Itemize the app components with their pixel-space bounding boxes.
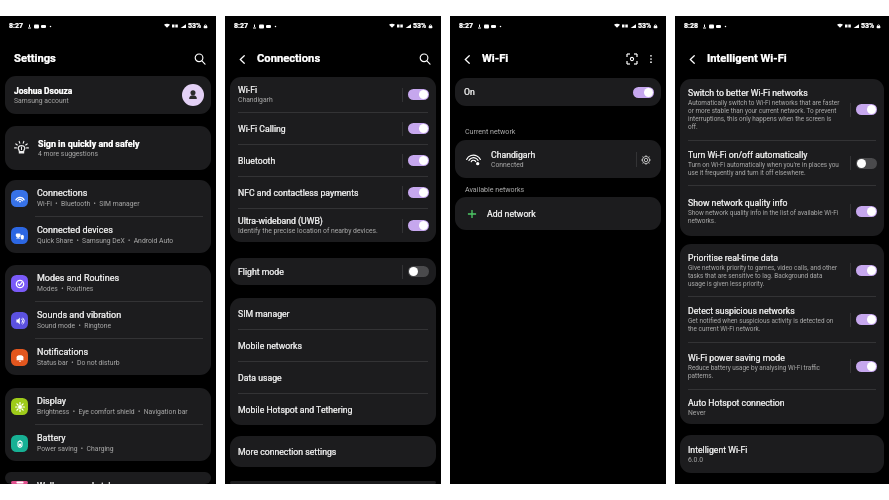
button[interactable]: Scan QR code [624,51,640,67]
button[interactable]: Data usage [230,362,436,393]
staticText: 8:27 [9,22,24,30]
button[interactable]: Bluetooth [230,145,436,176]
button[interactable]: Prioritise real-time data [680,244,884,296]
staticText: Battery [37,433,66,444]
staticText: Mobile Hotspot and Tethering [238,405,353,415]
staticText: Wi-Fi Calling [238,124,286,134]
staticText: NFC and contactless payments [238,188,359,198]
staticText: Brightness • Eye comfort shield • Naviga… [37,408,188,416]
button[interactable]: More options [643,51,659,67]
button[interactable]: Off [408,266,429,277]
button[interactable]: Wi-Fi power saving mode [680,343,884,389]
button[interactable]: Back [459,51,476,68]
button[interactable]: Turn Wi-Fi on/off automatically [680,141,884,185]
button[interactable]: Back [234,51,251,68]
button[interactable]: Network settings [637,151,654,168]
button[interactable]: On [408,155,429,166]
staticText: Intelligent Wi-Fi [707,52,787,65]
button[interactable]: Mobile Hotspot and Tethering [230,394,436,425]
staticText: Switch to better Wi-Fi networks [688,88,808,98]
staticText: Wi-Fi power saving mode [688,353,785,363]
button[interactable]: More connection settings [230,436,436,467]
button[interactable]: Profile [182,84,204,106]
staticText: Show network quality info [688,198,788,208]
button[interactable]: Battery [5,425,211,461]
button[interactable]: Connected devices [5,217,211,253]
button[interactable]: Wallpaper and style [5,481,211,484]
button[interactable]: Off [856,158,877,169]
button[interactable]: Auto Hotspot connection [680,390,884,424]
staticText: Turn on Wi-Fi automatically when you're … [688,161,840,177]
staticText: 4 more suggestions [38,150,98,158]
button[interactable]: Wi-Fi [230,77,436,112]
staticText: Settings [14,52,56,65]
button[interactable]: Joshua Dsouza [5,76,211,114]
button[interactable]: SIM manager [230,298,436,329]
staticText: Flight mode [238,267,284,277]
staticText: 53% [638,22,652,30]
staticText: Wallpaper and style [37,481,116,484]
button[interactable]: Chandigarh [455,140,661,178]
staticText: Wi-Fi • Bluetooth • SIM manager [37,200,140,208]
button[interactable]: Flight mode [230,258,436,285]
staticText: Prioritise real-time data [688,253,778,263]
staticText: 8:27 [459,22,474,30]
button[interactable]: Detect suspicious networks [680,297,884,342]
button[interactable]: On [856,314,877,325]
staticText: Auto Hotspot connection [688,398,785,408]
staticText: Connected devices [37,225,113,236]
button[interactable]: On [408,89,429,100]
staticText: Display [37,396,67,407]
button[interactable]: Connections [5,180,211,216]
button[interactable]: On [856,265,877,276]
staticText: Power saving • Charging [37,445,114,453]
staticText: Ultra-wideband (UWB) [238,216,323,226]
button[interactable]: Ultra-wideband (UWB) [230,209,436,242]
staticText: On [464,87,475,97]
staticText: Chandigarh [491,150,536,160]
button[interactable]: Search [416,50,434,68]
staticText: Samsung account [14,97,69,105]
button[interactable]: Add network [455,197,661,230]
button[interactable]: Sign in quickly and safely [5,126,211,170]
staticText: Sounds and vibration [37,310,122,321]
button[interactable]: On [856,104,877,115]
staticText: Show network quality info in the list of… [688,209,840,225]
staticText: Connected [491,161,524,169]
button[interactable]: Switch to better Wi-Fi networks [680,79,884,140]
staticText: 53% [413,22,427,30]
staticText: 8:28 [684,22,699,30]
button[interactable]: On [455,78,661,106]
button[interactable]: On [856,206,877,217]
button[interactable]: Sounds and vibration [5,302,211,338]
button[interactable]: Back [684,51,701,68]
button[interactable]: Notifications [5,339,211,375]
button[interactable]: NFC and contactless payments [230,177,436,208]
staticText: Bluetooth [238,156,276,166]
staticText: Turn Wi-Fi on/off automatically [688,150,808,160]
button[interactable]: Modes and Routines [5,265,211,301]
staticText: Modes and Routines [37,273,120,284]
button[interactable]: On [856,361,877,372]
button[interactable]: Intelligent Wi-Fi [680,435,884,473]
button[interactable]: Search [191,50,209,68]
button[interactable]: On [408,123,429,134]
staticText: Chandigarh [238,96,273,104]
staticText: 53% [861,22,875,30]
button[interactable]: Display [5,388,211,424]
staticText: Mobile networks [238,341,302,351]
staticText: 53% [188,22,202,30]
button[interactable]: Wi-Fi Calling [230,113,436,144]
button[interactable]: On [633,87,654,98]
button[interactable]: Mobile networks [230,330,436,361]
staticText: Current network [465,127,516,135]
button[interactable]: Show network quality info [680,186,884,236]
staticText: Get notified when suspicious activity is… [688,317,840,333]
staticText: Modes • Routines [37,285,94,293]
staticText: Wi-Fi [482,52,509,65]
staticText: Quick Share • Samsung DeX • Android Auto [37,237,174,245]
button[interactable]: On [408,220,429,231]
staticText: Data usage [238,373,282,383]
staticText: Status bar • Do not disturb [37,359,120,367]
button[interactable]: On [408,187,429,198]
